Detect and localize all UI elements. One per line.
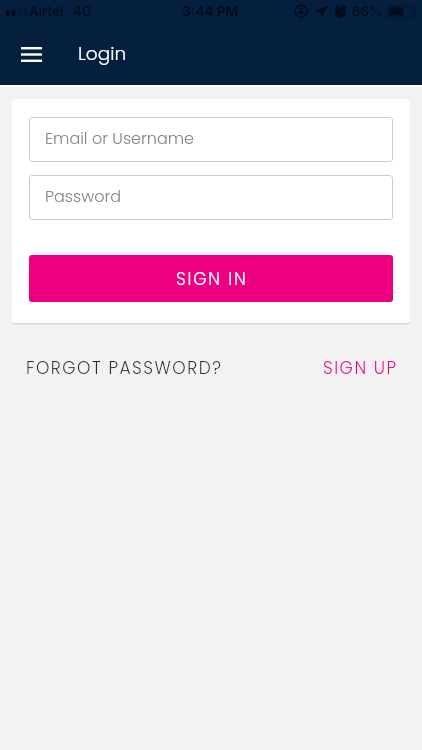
button[interactable]: Password <box>29 175 393 220</box>
button[interactable]: FORGOT PASSWORD? <box>26 356 223 380</box>
button[interactable]: Open navigation menu <box>9 32 53 76</box>
staticText: 66% <box>352 3 383 19</box>
staticText: Login <box>78 41 127 67</box>
button[interactable]: SIGN UP <box>323 356 398 380</box>
staticText: 4G <box>73 3 92 19</box>
staticText: Airtel <box>29 3 64 19</box>
staticText: SIGN IN <box>176 267 248 291</box>
button[interactable]: SIGN IN <box>29 255 393 302</box>
staticText: Email or Username <box>45 127 195 149</box>
staticText: 3:44 PM <box>182 3 239 19</box>
button[interactable]: Email or Username <box>29 117 393 162</box>
staticText: Password <box>45 185 122 207</box>
